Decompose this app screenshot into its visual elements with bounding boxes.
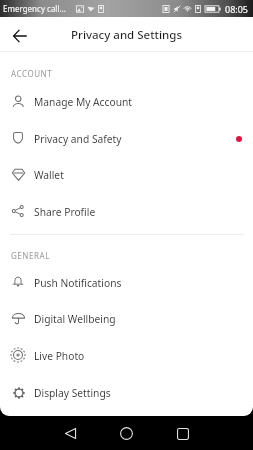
staticText: Privacy and Safety (34, 132, 122, 146)
button[interactable]: Privacy and Safety (0, 121, 253, 157)
staticText: Manage My Account (34, 95, 133, 109)
staticText: Emergency call… (3, 3, 66, 14)
button[interactable]: Recent apps (170, 421, 195, 446)
staticText: Digital Wellbeing (34, 312, 116, 326)
button[interactable]: Display Settings (0, 375, 253, 411)
staticText: ACCOUNT (11, 68, 53, 79)
button[interactable]: Wallet (0, 157, 253, 193)
staticText: Push Notifications (34, 276, 122, 290)
button[interactable]: Live Photo (0, 338, 253, 374)
staticText: Privacy and Settings (71, 27, 183, 43)
button[interactable]: Manage My Account (0, 84, 253, 120)
button[interactable]: Home (114, 421, 139, 446)
button[interactable]: Share Profile (0, 194, 253, 230)
staticText: Display Settings (34, 386, 111, 400)
button[interactable]: Digital Wellbeing (0, 301, 253, 337)
staticText: Live Photo (34, 349, 85, 363)
button[interactable]: Push Notifications (0, 265, 253, 301)
button[interactable]: Back (58, 421, 83, 446)
button[interactable]: Back (7, 23, 32, 48)
staticText: 08:05 (225, 3, 249, 15)
staticText: Wallet (34, 168, 64, 182)
staticText: Share Profile (34, 205, 96, 219)
staticText: GENERAL (11, 250, 50, 261)
